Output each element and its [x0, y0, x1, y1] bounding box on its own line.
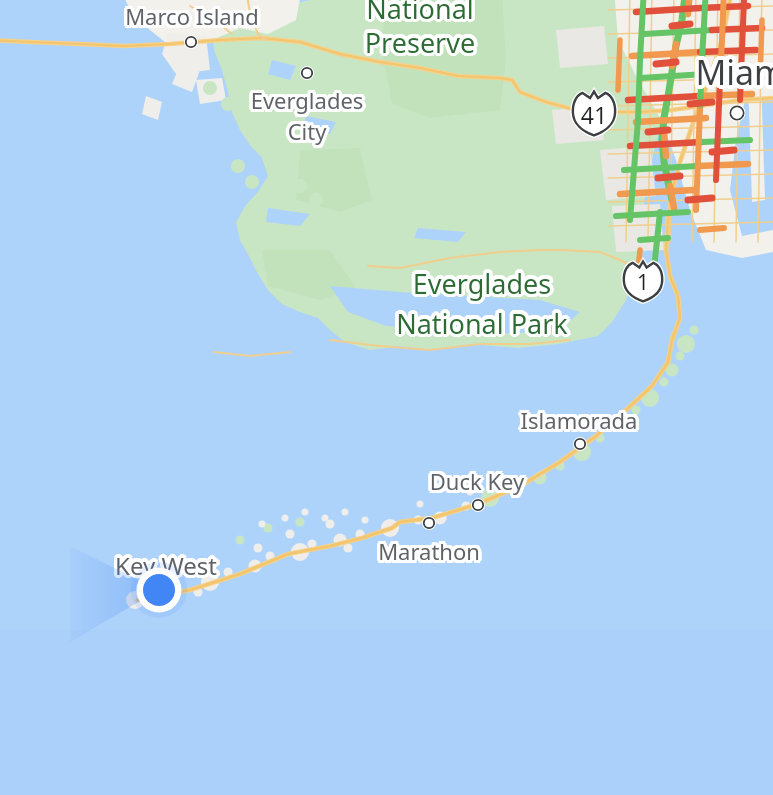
- button[interactable]: Map of South Florida and the Florida Key…: [0, 0, 773, 795]
- button[interactable]: Your location: [0, 0, 773, 795]
